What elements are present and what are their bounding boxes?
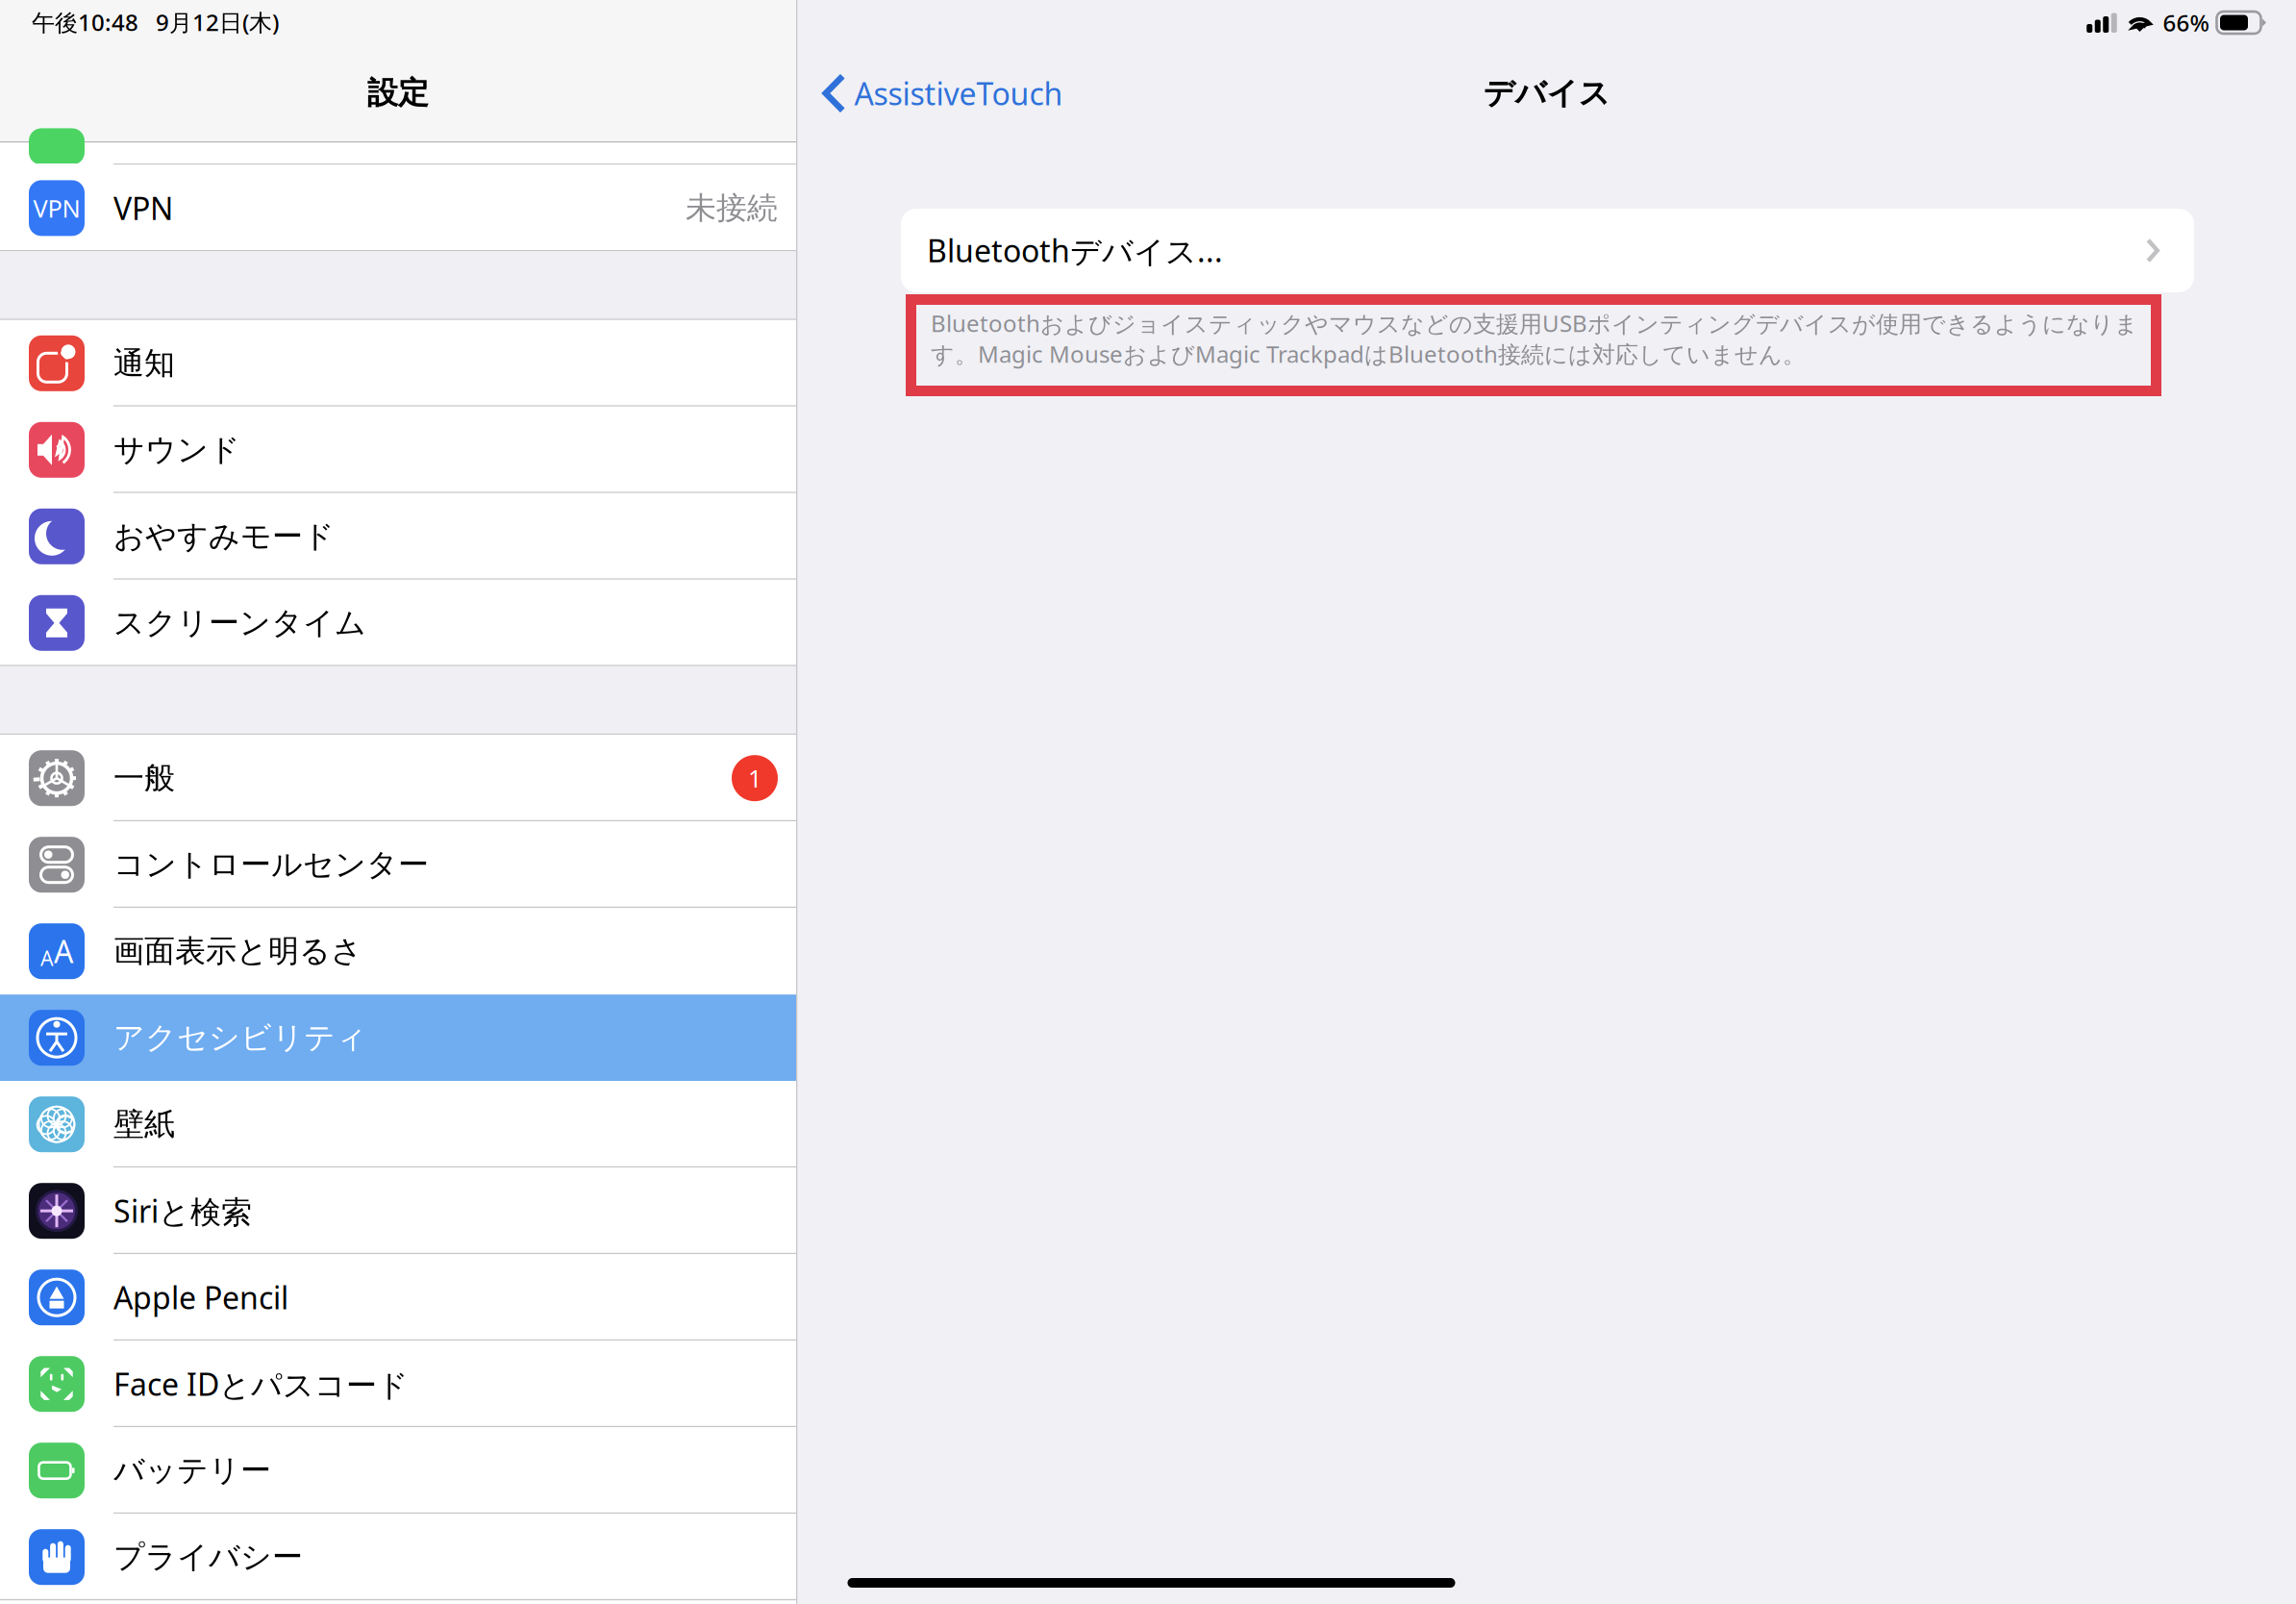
staticText: Siriと検索 bbox=[113, 1190, 252, 1231]
staticText: デバイス bbox=[1483, 74, 1610, 112]
staticText: プライバシー bbox=[113, 1538, 303, 1576]
staticText: バッテリー bbox=[113, 1452, 271, 1489]
staticText: 壁紙 bbox=[113, 1105, 175, 1143]
staticText: Bluetoothデバイス... bbox=[927, 230, 1223, 271]
button[interactable]: Bluetoothデバイス... bbox=[901, 209, 2194, 292]
button[interactable]: AssistiveTouch bbox=[798, 45, 1063, 141]
staticText: Apple Pencil bbox=[113, 1277, 288, 1318]
staticText: Bluetoothおよびジョイスティックやマウスなどの支援用USBポインティング… bbox=[931, 308, 2138, 369]
staticText: 通知 bbox=[113, 344, 175, 382]
button[interactable]: Siriと検索 bbox=[0, 1168, 796, 1254]
button[interactable]: バッテリー bbox=[0, 1427, 796, 1514]
staticText: アクセシビリティ bbox=[113, 1019, 367, 1057]
button[interactable]: A bbox=[0, 908, 796, 995]
staticText: VPN bbox=[33, 192, 80, 224]
button[interactable]: 一般 bbox=[0, 735, 796, 821]
staticText: 66% bbox=[2163, 7, 2209, 38]
staticText: 未接続 bbox=[686, 189, 778, 227]
button[interactable]: 通知 bbox=[0, 320, 796, 407]
button[interactable]: コントロールセンター bbox=[0, 821, 796, 908]
staticText: 一般 bbox=[113, 759, 175, 797]
staticText: 設定 bbox=[367, 74, 429, 112]
staticText: A bbox=[40, 944, 54, 972]
staticText: VPN bbox=[113, 188, 173, 229]
button[interactable]: VPN bbox=[0, 165, 796, 251]
staticText: 画面表示と明るさ bbox=[113, 932, 362, 970]
button[interactable]: サウンド bbox=[0, 407, 796, 493]
button[interactable]: アクセシビリティ bbox=[0, 995, 796, 1081]
staticText: A bbox=[54, 931, 73, 972]
staticText: 1 bbox=[748, 762, 761, 794]
button[interactable]: プライバシー bbox=[0, 1514, 796, 1600]
button[interactable]: Face IDとパスコード bbox=[0, 1341, 796, 1427]
button[interactable]: Apple Pencil bbox=[0, 1254, 796, 1341]
staticText: スクリーンタイム bbox=[113, 604, 366, 642]
staticText: 午後10:48 9月12日(木) bbox=[32, 7, 279, 38]
button[interactable]: おやすみモード bbox=[0, 493, 796, 580]
staticText: サウンド bbox=[113, 431, 240, 469]
button[interactable]: 壁紙 bbox=[0, 1081, 796, 1168]
staticText: AssistiveTouch bbox=[854, 73, 1063, 114]
staticText: コントロールセンター bbox=[113, 846, 429, 884]
staticText: おやすみモード bbox=[113, 517, 335, 555]
staticText: Face IDとパスコード bbox=[113, 1363, 409, 1405]
button[interactable]: スクリーンタイム bbox=[0, 580, 796, 666]
